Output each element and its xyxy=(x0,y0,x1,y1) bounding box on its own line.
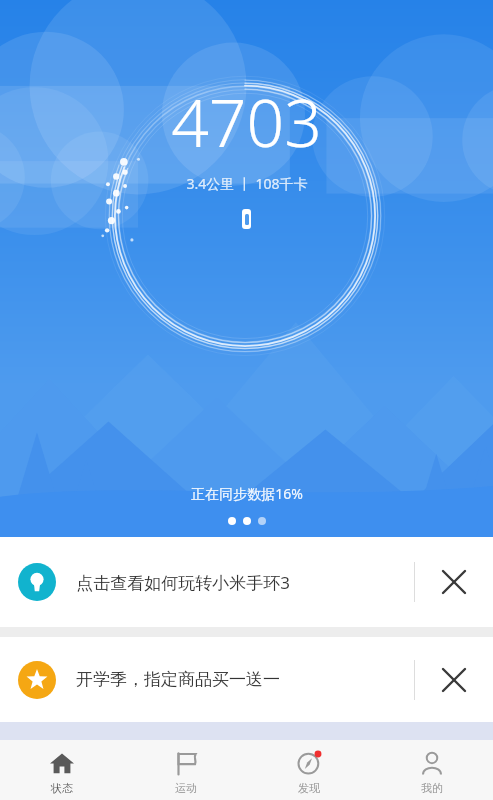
staticText: 4703 xyxy=(171,76,322,166)
staticText: 正在同步数据16% xyxy=(191,484,303,503)
staticText: 运动 xyxy=(175,781,197,795)
button[interactable]: 我的 xyxy=(370,740,493,800)
button[interactable]: 发现 xyxy=(247,740,370,800)
button[interactable]: 点击查看如何玩转小米手环3 xyxy=(0,537,493,627)
button[interactable]: 运动 xyxy=(124,740,247,800)
staticText: 开学季，指定商品买一送一 xyxy=(76,669,280,690)
button[interactable]: Dismiss xyxy=(415,537,493,627)
staticText: 我的 xyxy=(421,781,443,795)
button[interactable]: 开学季，指定商品买一送一 xyxy=(0,637,493,722)
staticText: 状态 xyxy=(51,781,73,795)
button[interactable]: Dismiss xyxy=(415,637,493,722)
staticText: 发现 xyxy=(298,781,320,795)
staticText: 点击查看如何玩转小米手环3 xyxy=(76,571,290,594)
staticText: 3.4公里 丨 108千卡 xyxy=(186,174,308,193)
button[interactable]: 状态 xyxy=(0,740,124,800)
